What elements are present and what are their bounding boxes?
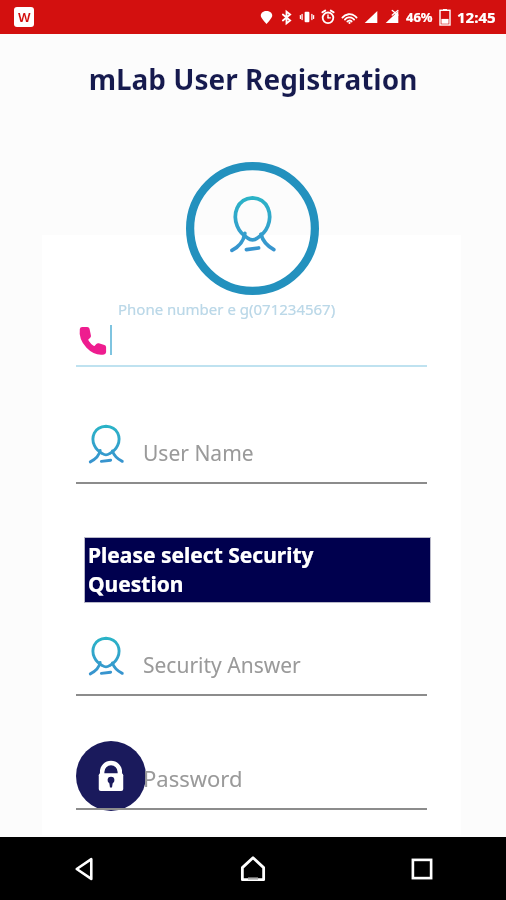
button[interactable]: Home: [168, 837, 337, 900]
staticText: Phone number e g(071234567): [118, 299, 336, 319]
staticText: Please select Security: [88, 541, 314, 570]
other: Phone: [76, 326, 104, 354]
staticText: Question: [88, 570, 184, 599]
staticText: Password: [143, 763, 243, 793]
button[interactable]: Phone number e g(071234567): [42, 299, 461, 381]
button[interactable]: Password: [42, 741, 461, 823]
staticText: User Name: [143, 439, 254, 468]
staticText: mLab User Registration: [0, 60, 506, 98]
button[interactable]: Security Answer: [42, 631, 461, 709]
button[interactable]: Recent apps: [337, 837, 506, 900]
button[interactable]: User Name: [42, 419, 461, 497]
button[interactable]: Please select Security: [85, 538, 430, 602]
other: Password: [76, 741, 146, 811]
button[interactable]: Back: [0, 837, 168, 900]
staticText: 46%: [406, 8, 433, 26]
staticText: Security Answer: [143, 651, 301, 680]
staticText: W: [18, 8, 31, 26]
staticText: 12:45: [457, 7, 496, 27]
